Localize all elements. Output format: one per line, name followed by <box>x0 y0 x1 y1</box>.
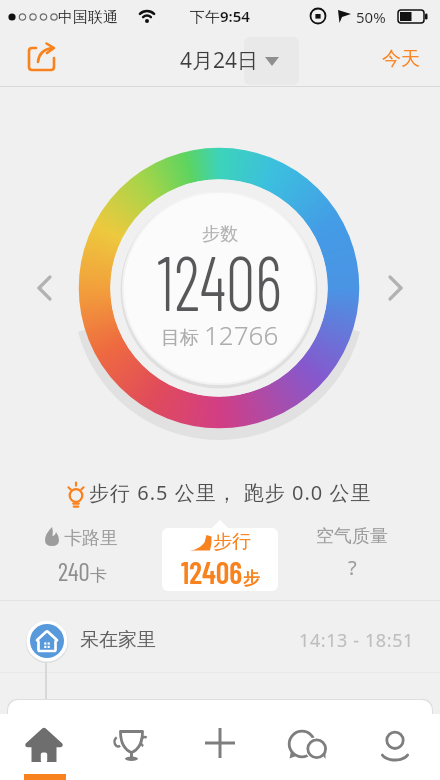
staticText: 14:13 - 18:51 <box>299 628 414 653</box>
staticText: 步行 <box>213 530 251 554</box>
staticText: ? <box>348 554 357 581</box>
staticText: 步 <box>243 568 260 589</box>
staticText: 呆在家里 <box>80 628 156 652</box>
button[interactable] <box>264 716 352 780</box>
staticText: 今天 <box>382 47 420 71</box>
button[interactable] <box>20 42 62 78</box>
staticText: 中国联通 <box>58 8 118 27</box>
button[interactable] <box>0 716 88 780</box>
button[interactable]: 今天 <box>382 47 420 71</box>
staticText: 空气质量 <box>316 525 388 548</box>
staticText: 下午9:54 <box>190 6 250 26</box>
button[interactable] <box>30 522 135 584</box>
staticText: 步行 6.5 公里， 跑步 0.0 公里 <box>89 479 372 506</box>
staticText: 步数 <box>202 223 238 246</box>
staticText: 12766 <box>204 317 279 352</box>
staticText: 卡路里 <box>64 527 118 550</box>
button[interactable] <box>352 716 440 780</box>
button[interactable]: 4月24日 <box>180 46 279 75</box>
button[interactable]: 呆在家里 <box>0 612 440 668</box>
button[interactable]: 步行 <box>162 528 278 591</box>
button[interactable]: 空气质量 <box>307 525 397 581</box>
button[interactable] <box>176 716 264 780</box>
staticText: 240 <box>58 556 90 586</box>
staticText: 卡 <box>90 565 107 586</box>
staticText: 4月24日 <box>180 46 259 75</box>
staticText: 目标 <box>161 324 204 350</box>
button[interactable] <box>88 716 176 780</box>
staticText: 12406 <box>181 554 243 590</box>
staticText: 12406 <box>157 235 283 326</box>
staticText: 50% <box>356 7 386 27</box>
